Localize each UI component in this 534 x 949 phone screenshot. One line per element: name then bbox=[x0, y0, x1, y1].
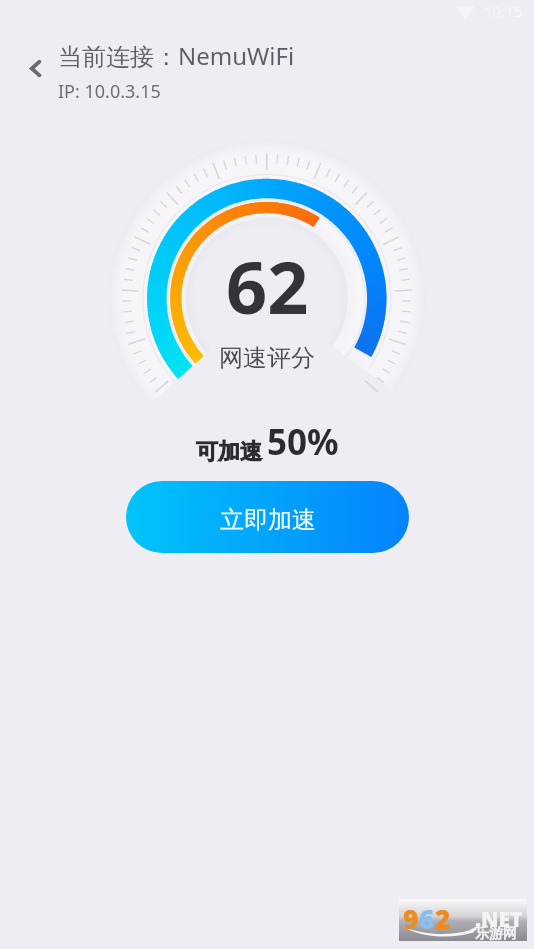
staticText: 网速评分 bbox=[219, 343, 315, 373]
staticText: 6 bbox=[419, 901, 435, 936]
staticText: 当前连接：NemuWiFi bbox=[58, 39, 295, 72]
staticText: 可加速 bbox=[196, 438, 262, 466]
staticText: IP: 10.0.3.15 bbox=[58, 79, 161, 104]
button[interactable]: Back bbox=[13, 46, 58, 90]
staticText: 2 bbox=[435, 901, 451, 936]
staticText: 立即加速 bbox=[220, 505, 316, 535]
staticText: 乐游网 bbox=[475, 925, 517, 943]
staticText: 62 bbox=[226, 237, 309, 335]
staticText: 50% bbox=[267, 418, 339, 466]
staticText: 9 bbox=[403, 901, 419, 936]
button[interactable]: 立即加速 bbox=[126, 481, 409, 553]
staticText: .NET bbox=[475, 905, 523, 934]
